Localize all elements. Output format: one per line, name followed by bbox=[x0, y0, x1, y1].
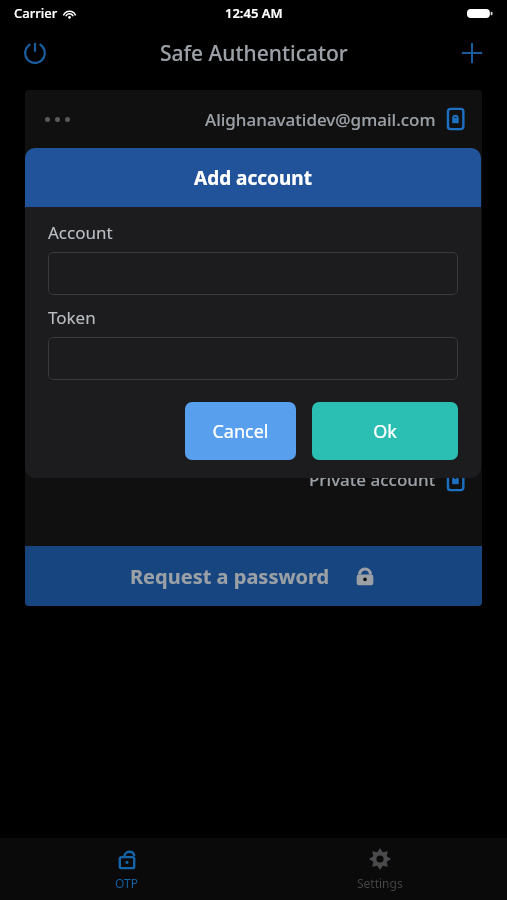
button[interactable]: Ok bbox=[312, 402, 458, 460]
button[interactable]: Power / Lock bbox=[16, 34, 54, 72]
staticText: Token bbox=[48, 306, 96, 329]
button[interactable]: Settings bbox=[253, 841, 507, 897]
staticText: 12:45 AM bbox=[225, 4, 283, 22]
staticText: Settings bbox=[357, 875, 403, 891]
staticText: Account bbox=[48, 221, 113, 244]
staticText: Ok bbox=[373, 419, 397, 444]
staticText: Safe Authenticator bbox=[160, 39, 348, 68]
staticText: Cancel bbox=[212, 419, 269, 444]
staticText: Request a password bbox=[130, 563, 330, 590]
button[interactable]: Add account bbox=[453, 34, 491, 72]
button[interactable]: Request a password bbox=[25, 546, 482, 606]
staticText: OTP bbox=[115, 875, 138, 891]
button[interactable]: More options bbox=[41, 113, 74, 126]
staticText: Add account bbox=[194, 165, 312, 191]
staticText: Alighanavatidev@gmail.com bbox=[205, 108, 436, 131]
button[interactable] bbox=[48, 252, 458, 295]
staticText: Carrier bbox=[14, 4, 58, 22]
button[interactable]: Cancel bbox=[185, 402, 296, 460]
staticText: Private account bbox=[309, 468, 436, 491]
button[interactable] bbox=[48, 337, 458, 380]
button[interactable]: OTP bbox=[0, 841, 253, 897]
